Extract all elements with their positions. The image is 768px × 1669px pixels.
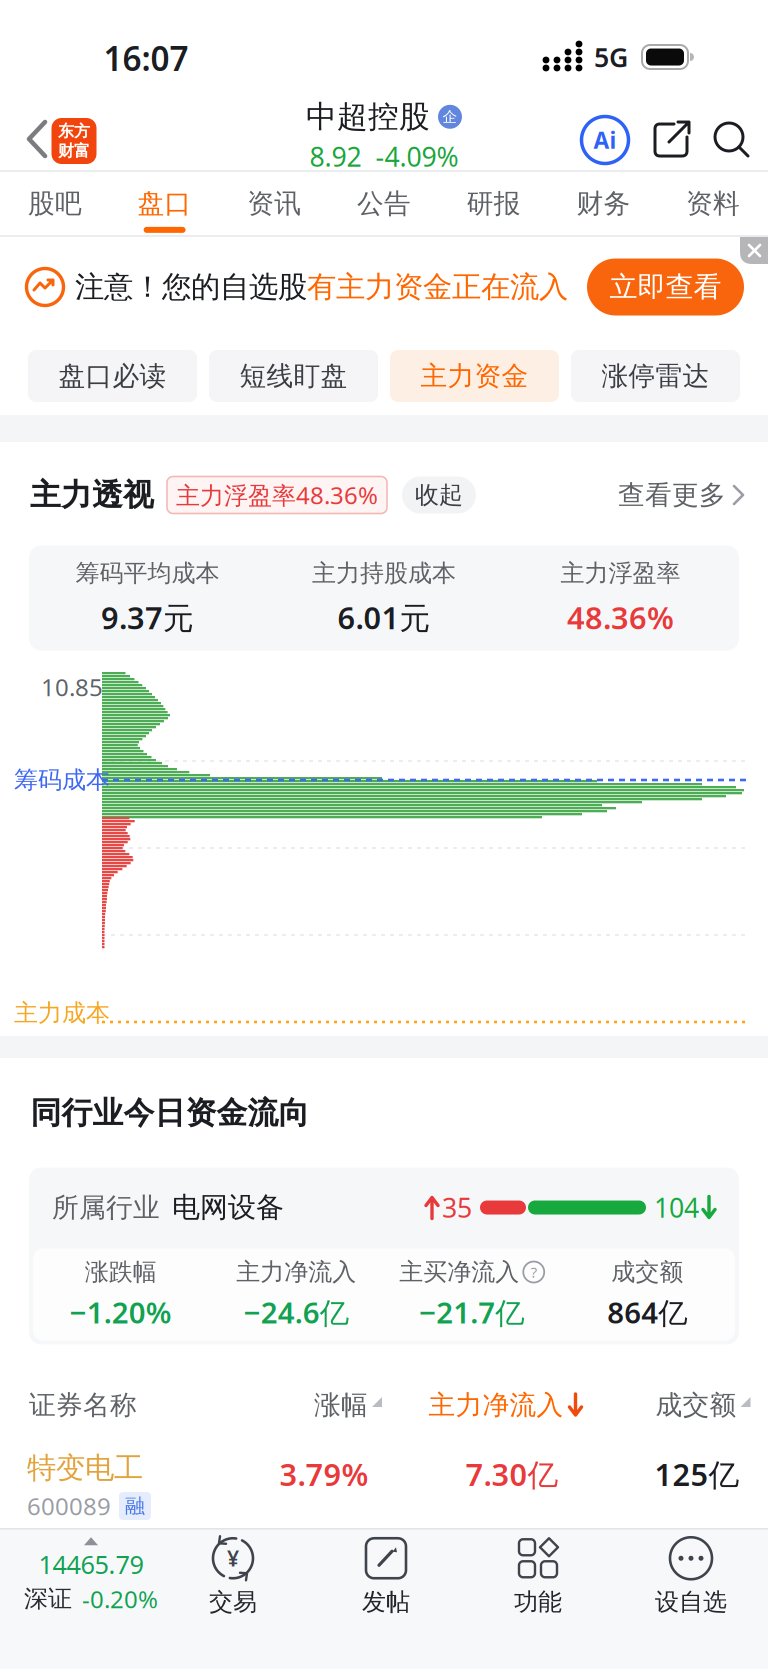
staticText: 立即查看: [609, 270, 721, 304]
staticText: 短线盯盘: [239, 360, 347, 392]
staticText: 主买净流入: [399, 1257, 519, 1287]
staticText: 筹码平均成本: [75, 558, 219, 588]
staticText: 同行业今日资金流向: [30, 1094, 309, 1132]
staticText: 功能: [514, 1587, 562, 1617]
staticText: 7.30亿: [465, 1454, 558, 1494]
staticText: 有主力资金正在流入: [307, 269, 568, 305]
button[interactable]: 涨幅: [314, 1389, 384, 1421]
button[interactable]: 发帖: [362, 1535, 410, 1617]
staticText: 10.85: [41, 671, 103, 703]
button[interactable]: 所属行业: [29, 1190, 739, 1225]
staticText: 35: [442, 1190, 472, 1225]
staticText: 查看更多: [618, 479, 726, 511]
staticText: 成交额: [655, 1389, 736, 1421]
staticText: 设自选: [655, 1587, 727, 1617]
staticText: 主力浮盈率48.36%: [176, 479, 378, 511]
button[interactable]: 公告: [329, 172, 439, 235]
staticText: 8.92 -4.09%: [309, 139, 458, 174]
staticText: 财务: [576, 187, 630, 220]
staticText: 注意！您的自选股: [75, 269, 307, 305]
button[interactable]: 盘口: [110, 172, 219, 235]
staticText: −24.6亿: [244, 1293, 349, 1332]
button[interactable]: 盘口必读: [28, 350, 197, 402]
staticText: 公告: [357, 187, 411, 220]
staticText: 主力净流入: [236, 1257, 356, 1287]
staticText: 5G: [594, 39, 628, 75]
staticText: 筹码成本: [14, 765, 110, 795]
staticText: -0.20%: [82, 1583, 158, 1615]
button[interactable]: 设自选: [655, 1535, 727, 1617]
staticText: 成交额: [611, 1257, 683, 1287]
button[interactable]: 主力净流入: [428, 1389, 585, 1421]
button[interactable]: 成交额: [655, 1389, 752, 1421]
staticText: −1.20%: [70, 1293, 172, 1332]
staticText: 14465.79: [38, 1547, 143, 1581]
staticText: ¥: [227, 1544, 239, 1572]
staticText: 中超控股: [306, 98, 430, 136]
staticText: 证券名称: [29, 1389, 137, 1421]
staticText: 东方: [58, 121, 90, 141]
staticText: 48.36%: [567, 597, 674, 638]
button[interactable]: 涨停雷达: [571, 350, 740, 402]
staticText: 涨幅: [314, 1389, 368, 1421]
staticText: −21.7亿: [419, 1293, 524, 1332]
button[interactable]: ¥: [209, 1535, 257, 1617]
staticText: 主力浮盈率: [561, 558, 681, 588]
button[interactable]: 立即查看: [587, 258, 744, 315]
button[interactable]: 查看更多: [618, 479, 746, 511]
staticText: 发帖: [362, 1587, 410, 1617]
staticText: Ai: [593, 125, 616, 155]
button[interactable]: 短线盯盘: [209, 350, 378, 402]
button[interactable]: 资讯: [219, 172, 329, 235]
staticText: 收起: [415, 480, 463, 510]
staticText: 主力持股成本: [312, 558, 456, 588]
button[interactable]: 主力资金: [390, 350, 559, 402]
staticText: 104: [654, 1190, 699, 1225]
staticText: 融: [125, 1494, 145, 1518]
button[interactable]: 研报: [439, 172, 548, 235]
staticText: 电网设备: [172, 1190, 284, 1225]
staticText: 125亿: [654, 1454, 739, 1494]
staticText: 研报: [467, 187, 521, 220]
button[interactable]: Share: [652, 120, 692, 160]
staticText: 财富: [58, 141, 90, 161]
button[interactable]: 股吧: [0, 172, 110, 235]
staticText: 企: [442, 108, 457, 126]
staticText: 16:07: [103, 36, 188, 80]
staticText: 3.79%: [279, 1454, 368, 1494]
staticText: 6.01元: [337, 597, 430, 638]
staticText: 主力净流入: [428, 1389, 563, 1421]
staticText: ?: [531, 1262, 537, 1282]
staticText: 主力透视: [30, 476, 154, 514]
staticText: 股吧: [28, 187, 82, 220]
button[interactable]: Back: [27, 120, 49, 160]
button[interactable]: 资料: [658, 172, 768, 235]
staticText: 资料: [686, 187, 740, 220]
staticText: 864亿: [607, 1293, 687, 1332]
staticText: 盘口必读: [58, 360, 166, 392]
staticText: 主力资金: [420, 360, 528, 392]
staticText: 9.37元: [101, 597, 194, 638]
staticText: 主力成本: [14, 998, 110, 1028]
staticText: 资讯: [247, 187, 301, 220]
button[interactable]: 收起: [402, 476, 476, 513]
staticText: 所属行业: [52, 1191, 160, 1224]
button[interactable]: Ai 助手: [581, 116, 628, 163]
staticText: 交易: [209, 1587, 257, 1617]
button[interactable]: 功能: [514, 1535, 562, 1617]
button[interactable]: 特变电工: [0, 1446, 768, 1526]
staticText: 600089: [27, 1490, 111, 1522]
staticText: 涨停雷达: [601, 360, 709, 392]
staticText: 盘口: [138, 187, 192, 220]
staticText: 特变电工: [27, 1450, 143, 1486]
button[interactable]: 14465.79: [24, 1537, 158, 1615]
button[interactable]: 东方财富: [51, 118, 96, 164]
staticText: 涨跌幅: [85, 1257, 157, 1287]
button[interactable]: Dismiss: [740, 237, 768, 264]
button[interactable]: Search: [712, 120, 752, 160]
staticText: 深证: [24, 1584, 72, 1614]
button[interactable]: 财务: [548, 172, 658, 235]
